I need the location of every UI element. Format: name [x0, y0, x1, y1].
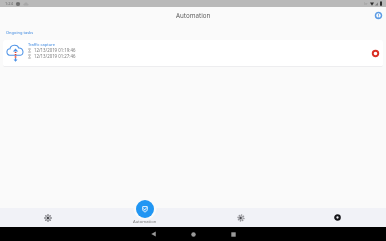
staticText: hr	[364, 1, 368, 6]
button[interactable]: Tools	[192, 208, 289, 227]
staticText: Ongoing tasks	[6, 30, 34, 35]
button[interactable]: Traffic capture	[3, 40, 383, 66]
staticText: 1:24	[5, 1, 13, 6]
staticText: Traffic capture	[28, 42, 55, 47]
button[interactable]: Back	[148, 229, 158, 239]
button[interactable]: Automation	[112, 208, 178, 227]
button[interactable]: Recents	[228, 229, 238, 239]
staticText: 12/13/2019 01:27:46	[34, 53, 76, 59]
button[interactable]: Stop task	[368, 46, 383, 61]
button[interactable]: Help	[366, 3, 386, 28]
button[interactable]: Home	[188, 229, 198, 239]
staticText: Automation	[176, 11, 211, 19]
staticText: Automation	[133, 219, 157, 225]
staticText: 12/13/2019 01:19:46	[34, 47, 76, 53]
button[interactable]: Network	[0, 208, 96, 227]
button[interactable]: More	[289, 208, 386, 227]
